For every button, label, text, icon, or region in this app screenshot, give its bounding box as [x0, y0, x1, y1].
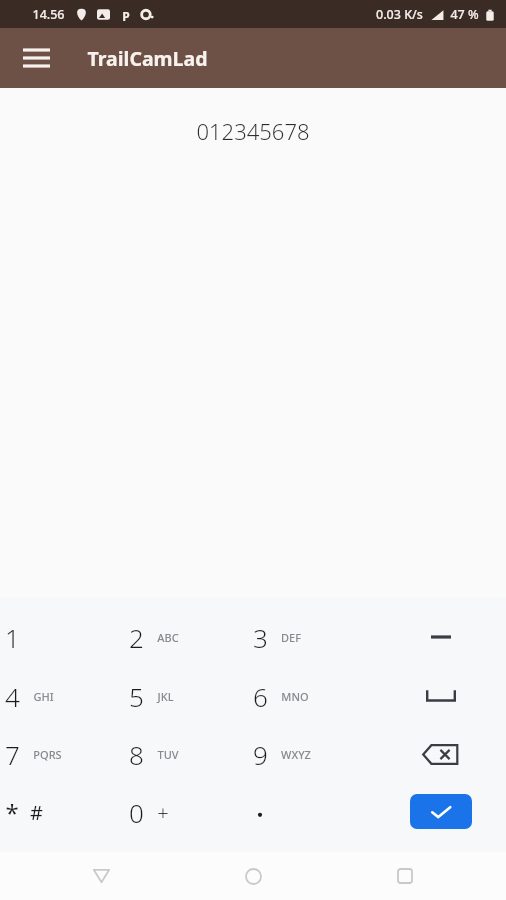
- staticText: #: [30, 799, 43, 826]
- staticText: 9: [253, 737, 268, 772]
- staticText: P: [122, 8, 130, 21]
- button[interactable]: Dash: [401, 608, 481, 666]
- staticText: ABC: [157, 630, 179, 645]
- staticText: 47 %: [450, 6, 479, 23]
- staticText: 1: [5, 620, 20, 655]
- staticText: JKL: [157, 689, 174, 704]
- button[interactable]: [243, 783, 367, 841]
- staticText: 012345678: [196, 116, 310, 146]
- staticText: GHI: [33, 689, 54, 704]
- staticText: 0: [129, 795, 144, 830]
- button[interactable]: Open navigation menu: [12, 34, 60, 82]
- button[interactable]: 9: [243, 725, 367, 783]
- button[interactable]: 0: [119, 783, 243, 841]
- staticText: 3: [253, 620, 268, 655]
- button[interactable]: Back: [77, 852, 125, 900]
- staticText: *: [5, 796, 19, 829]
- button[interactable]: 1: [0, 608, 119, 666]
- staticText: TrailCamLad: [87, 45, 208, 72]
- button[interactable]: Backspace: [401, 725, 481, 783]
- staticText: +: [157, 799, 169, 826]
- button[interactable]: Recent apps: [381, 852, 429, 900]
- staticText: PQRS: [33, 747, 62, 762]
- button[interactable]: Enter: [410, 794, 472, 829]
- staticText: 5: [129, 679, 144, 714]
- button[interactable]: 5: [119, 667, 243, 725]
- button[interactable]: 4: [0, 667, 119, 725]
- staticText: MNO: [281, 689, 309, 704]
- button[interactable]: 2: [119, 608, 243, 666]
- button[interactable]: 7: [0, 725, 119, 783]
- staticText: 8: [129, 737, 144, 772]
- staticText: 7: [5, 737, 20, 772]
- staticText: 2: [129, 620, 144, 655]
- button[interactable]: 8: [119, 725, 243, 783]
- staticText: WXYZ: [281, 747, 311, 762]
- staticText: DEF: [281, 630, 301, 645]
- button[interactable]: 3: [243, 608, 367, 666]
- button[interactable]: Home: [229, 852, 277, 900]
- button[interactable]: Space: [401, 667, 481, 725]
- button[interactable]: *: [0, 783, 119, 841]
- button[interactable]: 6: [243, 667, 367, 725]
- staticText: 14.56: [32, 6, 65, 23]
- staticText: TUV: [157, 747, 179, 762]
- staticText: 0.03 K/s: [376, 6, 423, 23]
- staticText: 6: [253, 679, 268, 714]
- staticText: 4: [5, 679, 20, 714]
